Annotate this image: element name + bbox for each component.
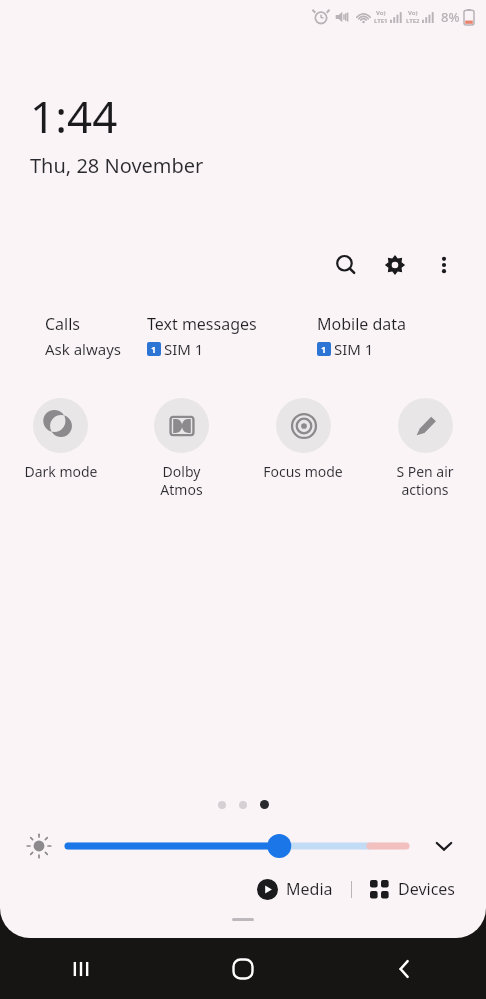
staticText: Focus mode <box>263 462 343 481</box>
staticText: Dolby Atmos <box>160 462 203 499</box>
staticText: Vo) <box>376 9 386 17</box>
button[interactable]: Brightness <box>68 833 406 859</box>
button[interactable]: Dark mode <box>0 398 121 481</box>
button[interactable]: Home <box>162 938 324 999</box>
button[interactable]: Focus mode <box>242 398 364 481</box>
staticText: LTE2 <box>406 17 420 25</box>
staticText: 1:44 <box>30 86 118 146</box>
button[interactable]: Expand brightness settings <box>426 828 462 864</box>
button[interactable]: Settings <box>373 243 417 287</box>
staticText: 8% <box>441 8 460 26</box>
staticText: Ask always <box>45 339 122 359</box>
staticText: SIM 1 <box>164 339 204 359</box>
button[interactable]: Search <box>324 243 368 287</box>
staticText: 1 <box>321 343 327 355</box>
staticText: Media <box>286 878 333 900</box>
button[interactable]: S Pen air actions <box>364 398 486 499</box>
button[interactable]: Back <box>324 938 486 999</box>
button[interactable]: Calls <box>45 313 147 359</box>
button[interactable]: Mobile data <box>317 313 486 359</box>
staticText: Thu, 28 November <box>30 152 204 179</box>
staticText: S Pen air actions <box>396 462 454 499</box>
staticText: 1 <box>151 343 157 355</box>
button[interactable]: Recent apps <box>0 938 162 999</box>
button[interactable]: Dolby Atmos <box>121 398 242 499</box>
button[interactable]: More options <box>422 243 466 287</box>
staticText: Dark mode <box>24 462 98 481</box>
staticText: Devices <box>398 878 456 900</box>
staticText: Vo) <box>408 9 418 17</box>
button[interactable]: Text messages <box>147 313 317 359</box>
staticText: Calls <box>45 313 81 335</box>
button[interactable]: Devices <box>366 874 460 904</box>
staticText: SIM 1 <box>334 339 374 359</box>
staticText: LTE1 <box>374 17 388 25</box>
staticText: Text messages <box>147 313 257 335</box>
button[interactable]: Media <box>253 874 337 904</box>
staticText: Mobile data <box>317 313 407 335</box>
